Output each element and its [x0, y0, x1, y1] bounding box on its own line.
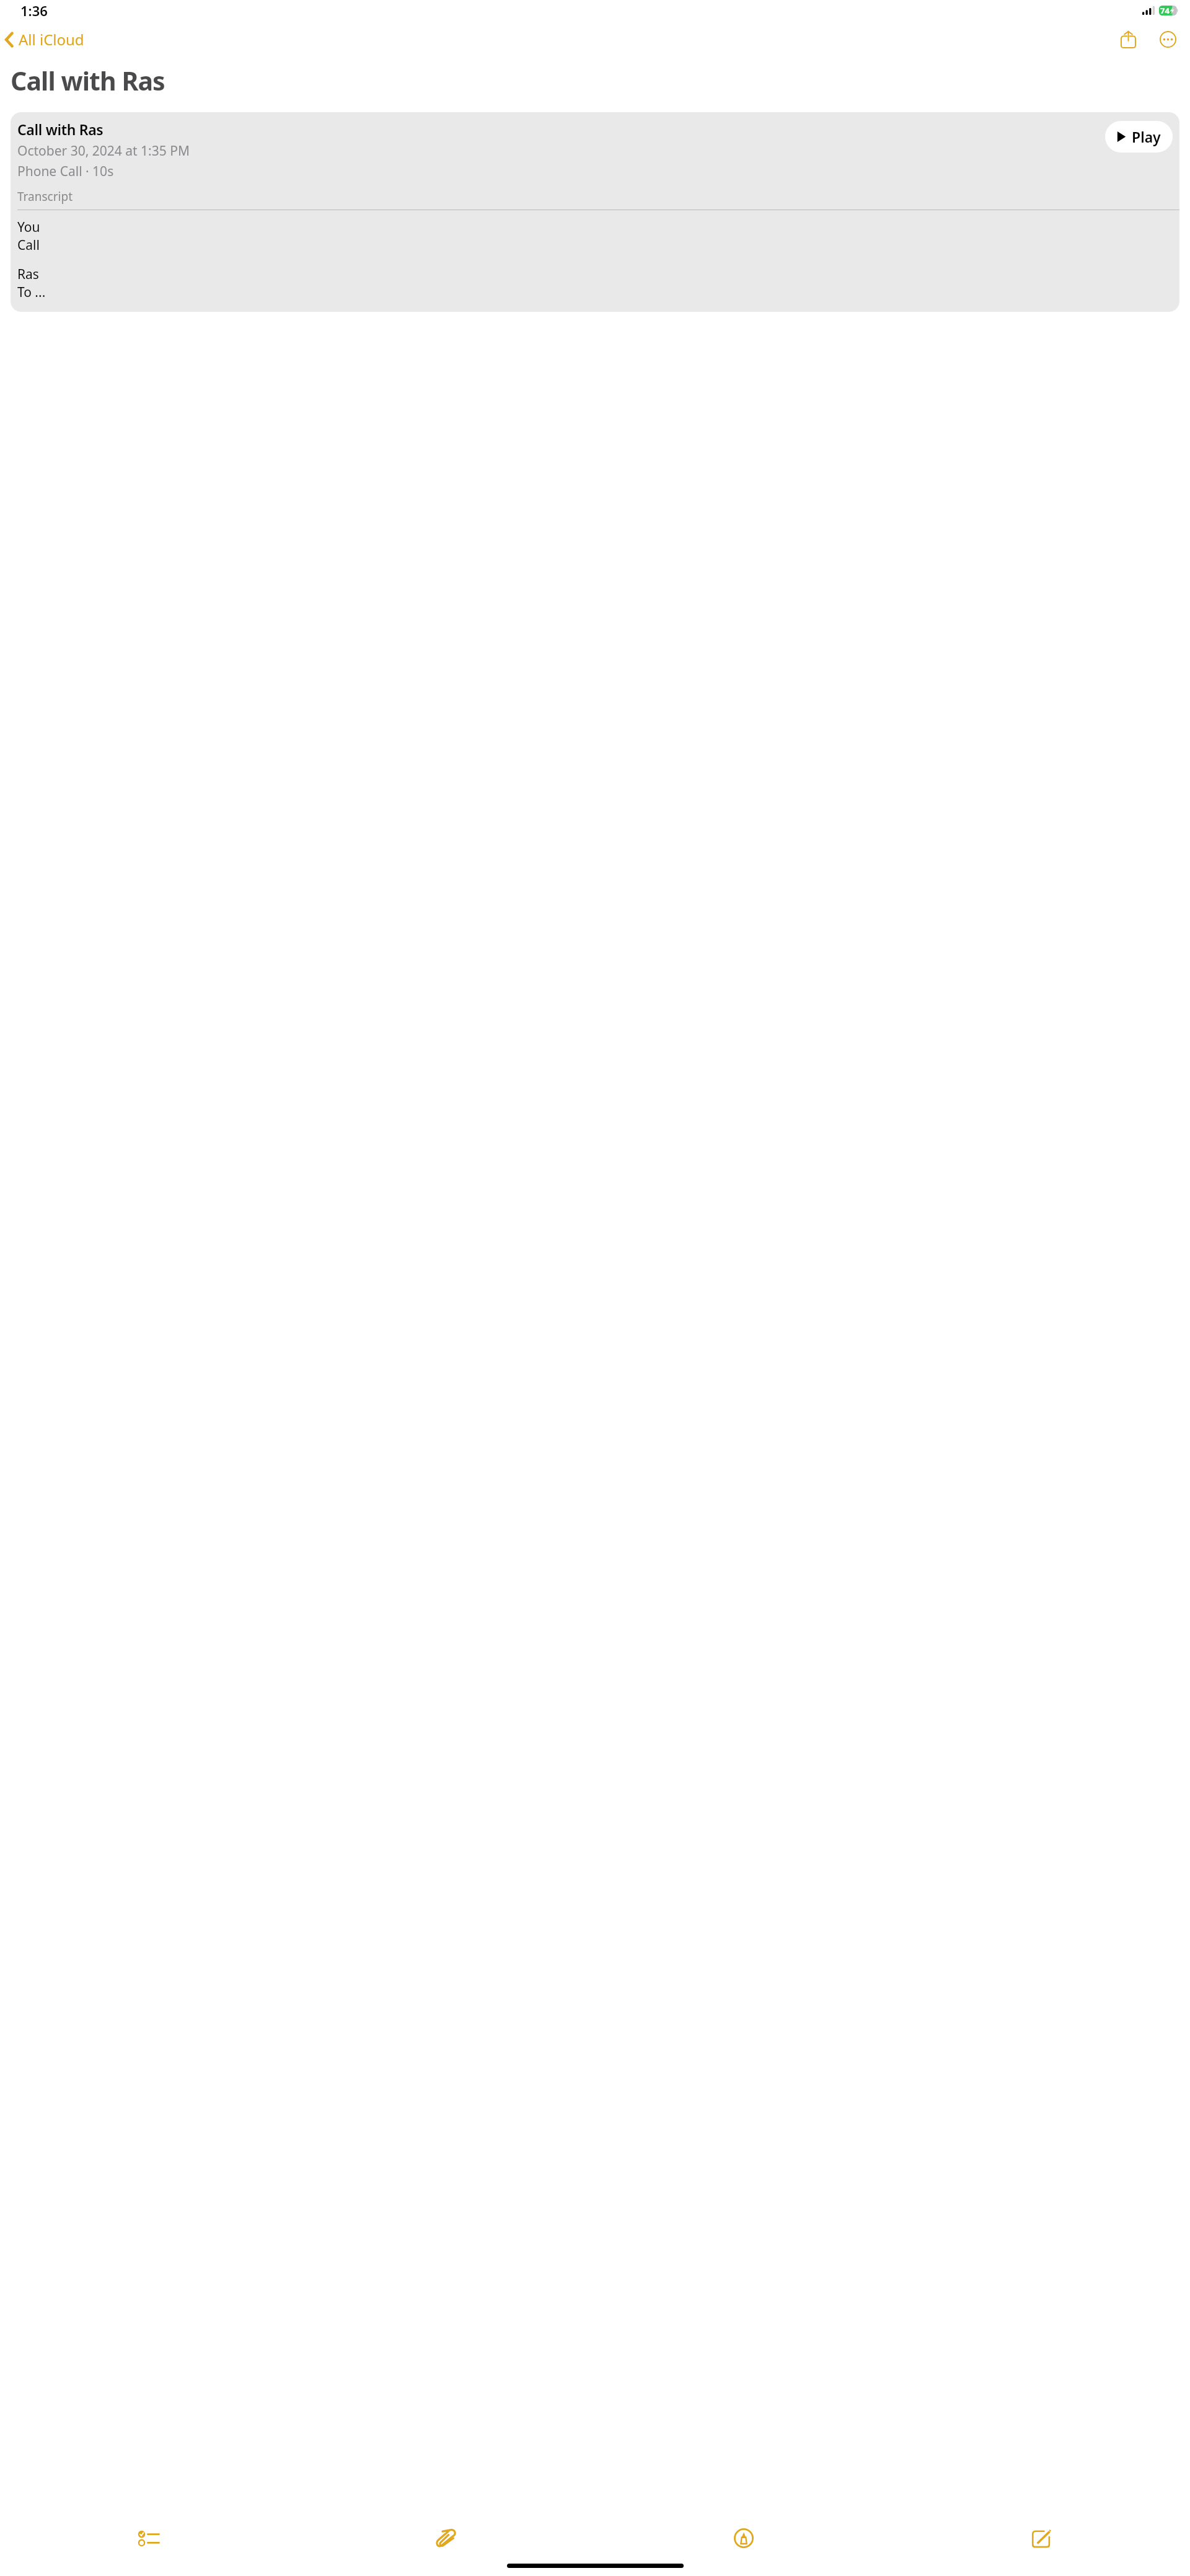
staticText: October 30, 2024 at 1:35 PM	[17, 142, 190, 160]
staticText: 74	[1160, 5, 1170, 16]
button[interactable]: Attach file	[297, 2516, 595, 2561]
button[interactable]: All iCloud	[0, 25, 90, 53]
staticText: You	[17, 218, 40, 236]
staticText: Call with Ras	[17, 120, 104, 139]
button[interactable]: Share	[1114, 25, 1142, 53]
button[interactable]: Checklist	[0, 2516, 297, 2561]
button[interactable]: Play	[1105, 121, 1173, 153]
staticText: Transcript	[17, 188, 73, 205]
staticText: Ras	[17, 265, 39, 283]
staticText: Phone Call · 10s	[17, 162, 114, 180]
button[interactable]: Markup	[595, 2516, 892, 2561]
staticText: All iCloud	[19, 29, 84, 50]
staticText: Play	[1132, 127, 1161, 146]
staticText: Call with Ras	[11, 63, 165, 98]
button[interactable]: Call with Ras	[11, 112, 1179, 312]
staticText: 1:36	[20, 1, 48, 20]
button[interactable]: More options	[1154, 25, 1181, 53]
staticText: To ...	[17, 283, 46, 301]
button[interactable]: New note	[892, 2516, 1190, 2561]
staticText: Call	[17, 236, 40, 254]
